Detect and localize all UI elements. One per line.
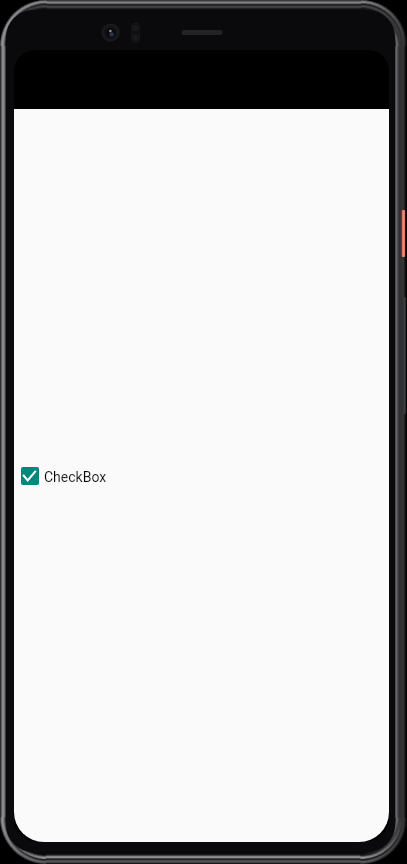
button[interactable]: CheckBox [14,459,112,493]
staticText: CheckBox [44,469,107,485]
